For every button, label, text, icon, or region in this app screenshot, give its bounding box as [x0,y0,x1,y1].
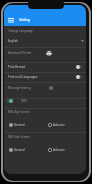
staticText: English [8,39,18,43]
staticText: Setting [19,18,30,22]
button[interactable]: General [4,120,45,130]
button[interactable] [4,26,86,35]
staticText: General [14,123,25,127]
staticText: Bluetooth Printer [8,51,32,55]
button[interactable] [4,62,86,72]
staticText: Milk Buy Screen [8,110,30,114]
button[interactable]: Open navigation menu [6,15,16,25]
staticText: Advance [53,148,65,152]
button[interactable] [4,132,86,143]
button[interactable]: Advance [45,120,86,130]
button[interactable]: Advance [45,145,86,155]
button[interactable] [4,82,86,98]
staticText: Milk Sale Screen [8,135,30,139]
staticText: General [14,148,25,152]
staticText: SMS [21,99,27,103]
button[interactable] [4,47,86,62]
button[interactable] [4,98,86,108]
button[interactable] [4,108,86,119]
button[interactable]: General [4,145,45,155]
staticText: Print in all Languages [8,75,38,79]
button[interactable] [4,72,86,82]
staticText: Print Receipt [8,65,26,69]
staticText: Change Language [8,29,33,33]
button[interactable] [4,35,86,47]
staticText: Message Setting [8,86,31,90]
staticText: Advance [53,123,65,127]
